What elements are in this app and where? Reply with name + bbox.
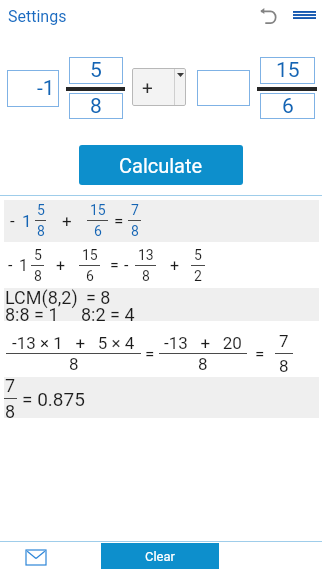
staticText: 5 xyxy=(90,58,102,83)
staticText: Settings xyxy=(8,7,67,26)
staticText: = 8 xyxy=(86,287,111,308)
staticText: 8:8 = 1 xyxy=(5,304,59,325)
staticText: - xyxy=(8,256,13,275)
button[interactable]: Menu xyxy=(288,0,321,31)
staticText: 8 xyxy=(142,268,150,284)
staticText: 15 xyxy=(90,202,106,218)
staticText: = xyxy=(110,256,119,275)
staticText: = xyxy=(255,344,265,364)
staticText: 8 xyxy=(5,401,16,422)
staticText: = xyxy=(114,211,124,231)
staticText: 6 xyxy=(86,268,94,284)
staticText: 5 xyxy=(194,247,202,263)
button[interactable]: Settings xyxy=(0,1,76,32)
staticText: 5 xyxy=(37,202,45,218)
staticText: -13 + 20 xyxy=(164,333,242,353)
staticText: 8 xyxy=(34,268,42,284)
staticText: 15 xyxy=(82,247,98,263)
staticText: - xyxy=(10,211,15,231)
button[interactable]: 6 xyxy=(260,93,315,119)
button[interactable]: Operation xyxy=(132,68,186,106)
staticText: 8 xyxy=(37,223,45,239)
staticText: -1 xyxy=(37,76,55,101)
staticText: 7 xyxy=(131,202,139,218)
staticText: 2 xyxy=(194,268,202,284)
button[interactable]: Calculate xyxy=(79,145,243,185)
staticText: -13 × 1 + 5 × 4 xyxy=(12,333,135,353)
button[interactable]: Input xyxy=(197,70,250,106)
staticText: 5 xyxy=(34,247,42,263)
button[interactable]: 15 xyxy=(260,57,315,84)
staticText: + xyxy=(170,256,180,275)
staticText: 1 xyxy=(22,211,32,231)
button[interactable]: Whole number xyxy=(7,70,59,107)
staticText: 8 xyxy=(131,223,139,239)
staticText: + xyxy=(56,256,66,275)
button[interactable]: Email xyxy=(18,544,54,570)
button[interactable]: 8 xyxy=(69,93,123,119)
staticText: Calculate xyxy=(119,154,203,177)
staticText: 7 xyxy=(279,331,289,351)
staticText: 6 xyxy=(94,223,102,239)
staticText: + xyxy=(62,211,72,231)
staticText: LCM(8,2) xyxy=(5,287,78,308)
staticText: 8 xyxy=(69,354,79,374)
staticText: Clear xyxy=(145,549,175,564)
staticText: 15 xyxy=(276,58,300,83)
staticText: 13 xyxy=(138,247,154,263)
staticText: = 0.875 xyxy=(22,388,85,410)
button[interactable]: Undo xyxy=(253,2,283,32)
staticText: = xyxy=(145,344,155,364)
staticText: 1 xyxy=(19,256,28,275)
staticText: + xyxy=(142,76,153,98)
button[interactable]: 5 xyxy=(69,57,123,84)
button[interactable]: Clear xyxy=(101,543,219,569)
staticText: 8 xyxy=(90,94,102,119)
staticText: 8:2 = 4 xyxy=(81,304,135,325)
staticText: 8 xyxy=(279,356,289,376)
staticText: 7 xyxy=(5,375,16,396)
staticText: - xyxy=(124,256,129,275)
staticText: 6 xyxy=(282,94,294,119)
staticText: 8 xyxy=(198,354,208,374)
